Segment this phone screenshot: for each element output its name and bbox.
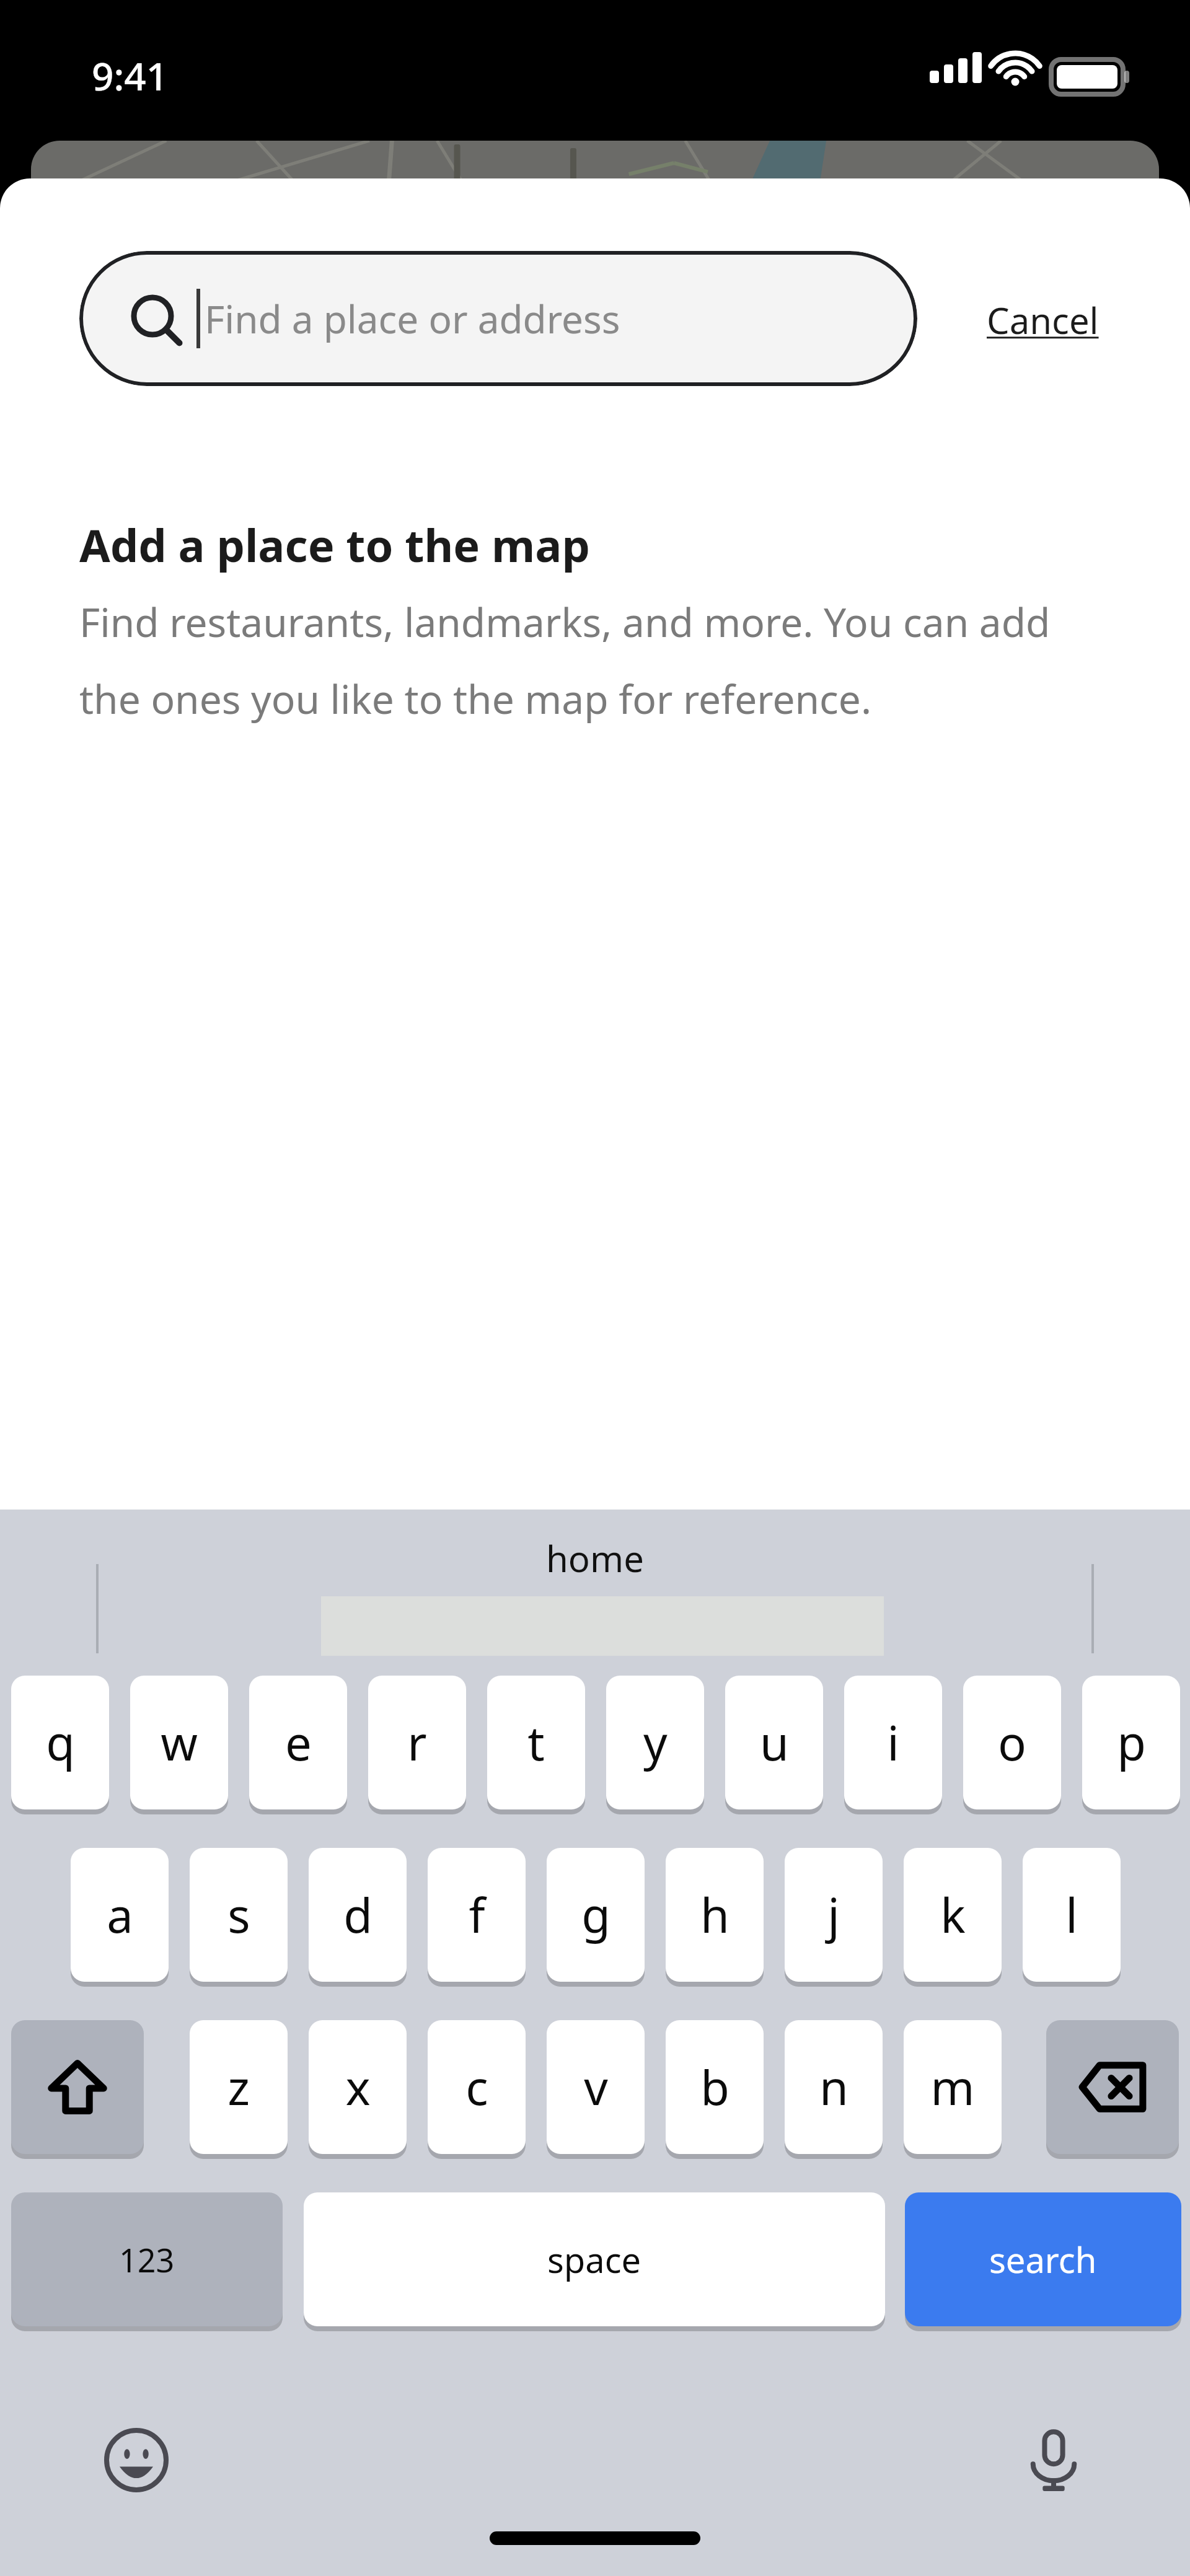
staticText: home [546, 1534, 644, 1583]
button[interactable]: q [11, 1676, 109, 1809]
button[interactable]: Find a place or address [79, 251, 917, 386]
button[interactable]: r [368, 1676, 466, 1809]
staticText: j [827, 1883, 840, 1947]
button[interactable]: Cancel [956, 286, 1129, 353]
staticText: e [285, 1710, 312, 1775]
button[interactable]: h [666, 1848, 764, 1982]
staticText: 123 [119, 2238, 175, 2282]
staticText: h [700, 1883, 729, 1947]
staticText: 9:41 [92, 50, 169, 102]
button[interactable]: d [309, 1848, 407, 1982]
staticText: q [46, 1710, 75, 1775]
button[interactable]: s [190, 1848, 288, 1982]
staticText: l [1065, 1883, 1078, 1947]
staticText: w [161, 1710, 198, 1775]
staticText: a [107, 1883, 133, 1947]
staticText: v [584, 2055, 608, 2119]
staticText: o [998, 1710, 1026, 1775]
button[interactable]: n [785, 2020, 883, 2154]
button[interactable]: 123 [11, 2192, 283, 2326]
button[interactable]: o [963, 1676, 1061, 1809]
staticText: x [345, 2055, 371, 2119]
staticText: k [940, 1883, 966, 1947]
staticText: d [343, 1883, 372, 1947]
staticText: Cancel [987, 296, 1099, 345]
staticText: s [227, 1883, 250, 1947]
button[interactable]: g [547, 1848, 645, 1982]
button[interactable]: x [309, 2020, 407, 2154]
button[interactable]: Emoji keyboard [74, 2398, 198, 2522]
staticText: p [1117, 1710, 1146, 1775]
button[interactable]: Voice input [992, 2398, 1116, 2522]
button[interactable]: space [304, 2192, 885, 2326]
button[interactable]: a [71, 1848, 169, 1982]
button[interactable]: m [904, 2020, 1002, 2154]
staticText: z [227, 2055, 250, 2119]
button[interactable]: search [905, 2192, 1181, 2326]
staticText: g [581, 1883, 610, 1947]
staticText: y [643, 1710, 668, 1775]
staticText: m [930, 2055, 975, 2119]
button[interactable]: p [1082, 1676, 1180, 1809]
button[interactable]: t [487, 1676, 585, 1809]
button[interactable]: Shift [11, 2020, 144, 2154]
button[interactable]: u [725, 1676, 823, 1809]
staticText: u [760, 1710, 789, 1775]
staticText: i [887, 1710, 899, 1775]
button[interactable]: b [666, 2020, 764, 2154]
staticText: Find a place or address [205, 292, 620, 345]
button[interactable]: f [428, 1848, 526, 1982]
staticText: Add a place to the map [79, 514, 590, 575]
button[interactable]: i [844, 1676, 942, 1809]
staticText: t [527, 1710, 545, 1775]
staticText: search [989, 2236, 1097, 2283]
button[interactable]: k [904, 1848, 1002, 1982]
button[interactable]: j [785, 1848, 883, 1982]
button[interactable]: c [428, 2020, 526, 2154]
button[interactable]: v [547, 2020, 645, 2154]
staticText: n [819, 2055, 848, 2119]
button[interactable]: y [606, 1676, 704, 1809]
button[interactable]: home [409, 1527, 781, 1589]
button[interactable]: Backspace [1046, 2020, 1179, 2154]
button[interactable]: w [130, 1676, 228, 1809]
staticText: f [469, 1883, 485, 1947]
staticText: c [465, 2055, 488, 2119]
staticText: Find restaurants, landmarks, and more. Y… [79, 595, 1096, 726]
button[interactable]: z [190, 2020, 288, 2154]
staticText: b [700, 2055, 729, 2119]
button[interactable]: l [1023, 1848, 1121, 1982]
staticText: r [407, 1710, 427, 1775]
staticText: space [547, 2236, 641, 2283]
button[interactable]: e [249, 1676, 347, 1809]
